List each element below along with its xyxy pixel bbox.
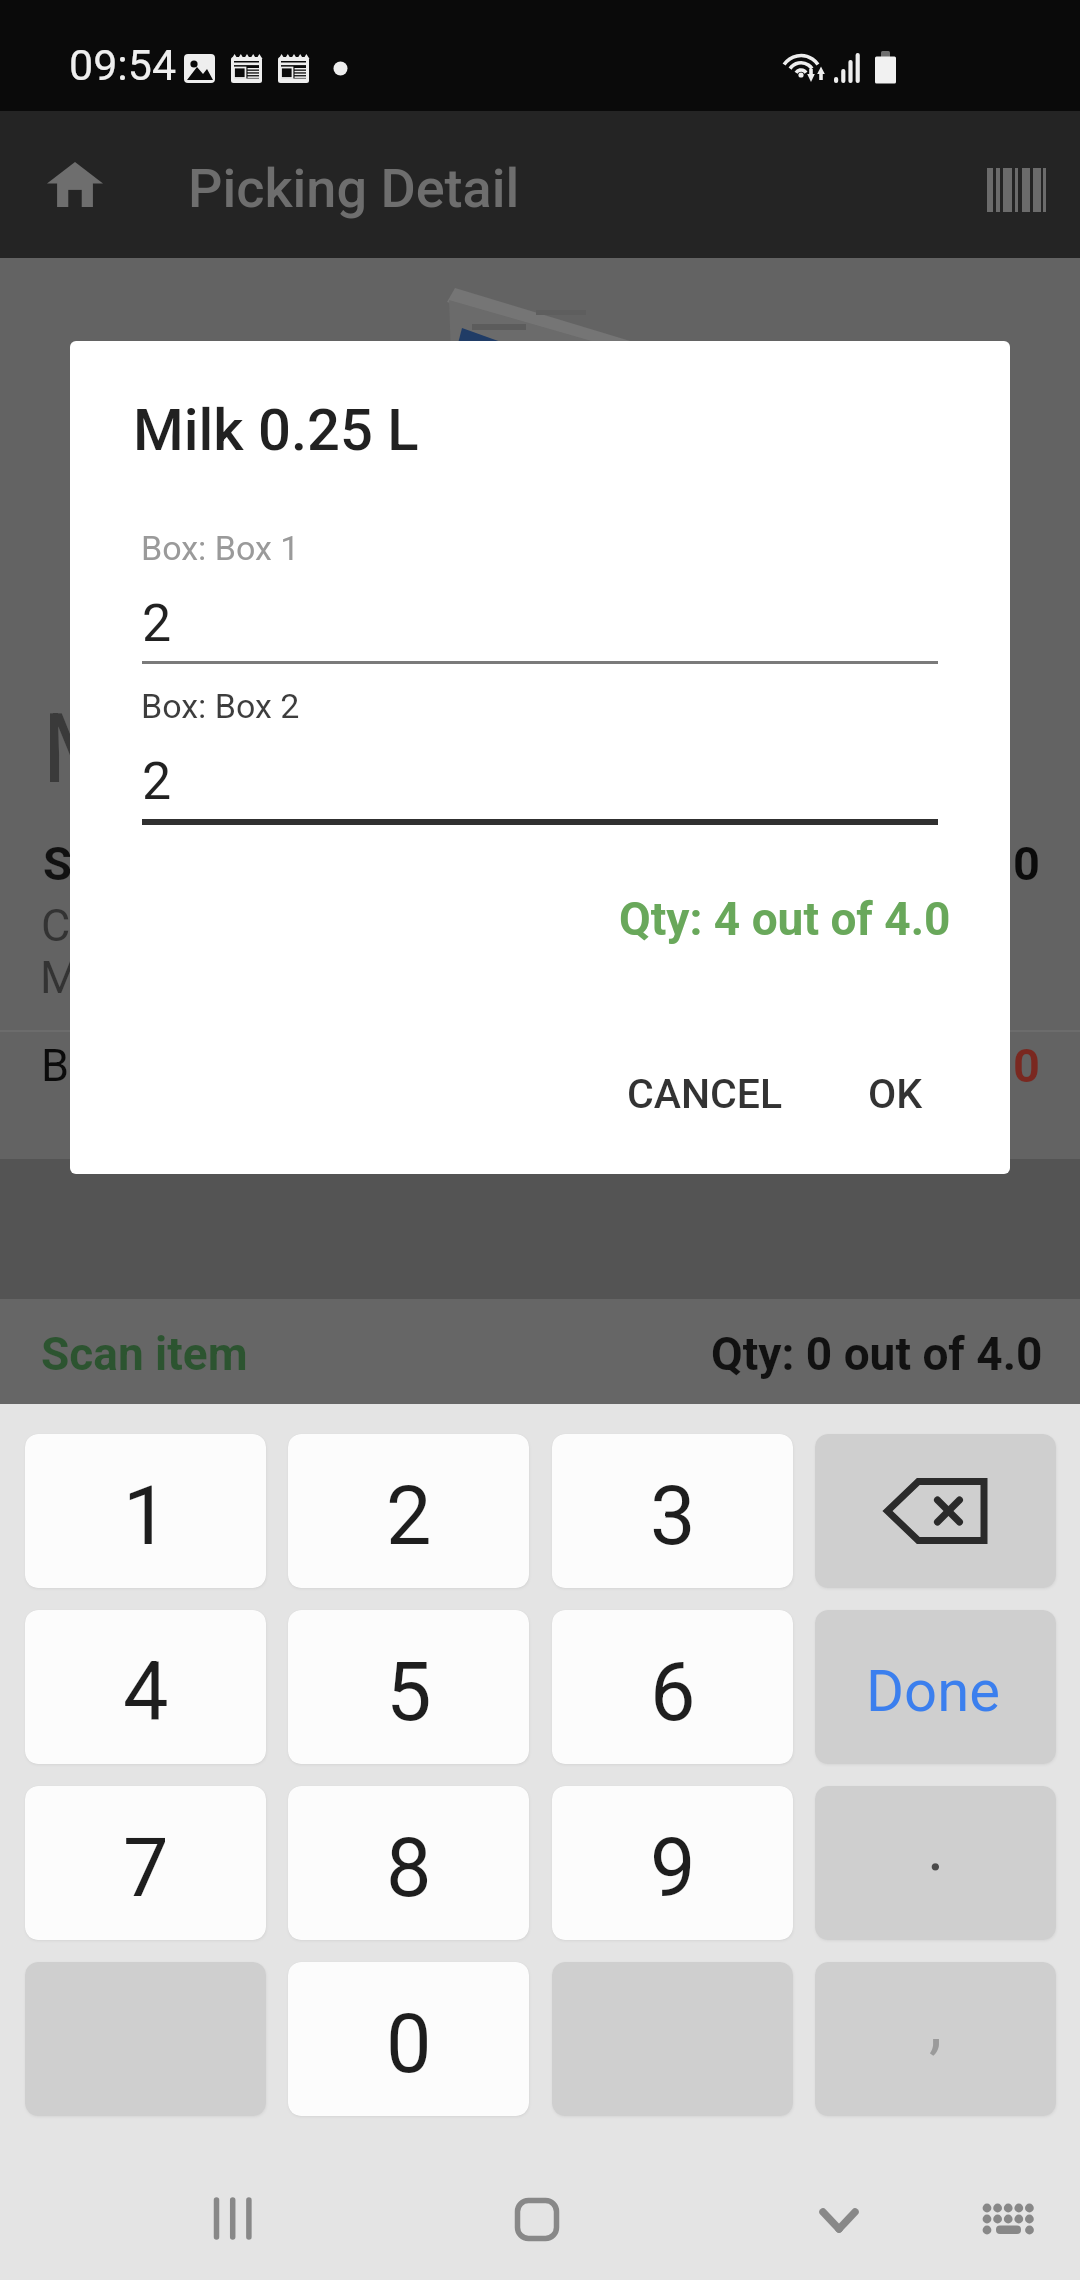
staticText: Client: Maxima <box>41 899 339 952</box>
button[interactable]: 8 <box>288 1786 529 1940</box>
button[interactable]: 2 <box>288 1434 529 1588</box>
button[interactable]: Done <box>815 1610 1056 1764</box>
staticText: 0 <box>1013 836 1040 891</box>
button[interactable]: 6 <box>552 1610 793 1764</box>
staticText: Milk 0.25 L <box>133 396 419 464</box>
staticText: Qty: 0 out of 4.0 <box>711 1327 1043 1381</box>
staticText: 0 <box>1013 1038 1040 1093</box>
button[interactable]: Scan barcode <box>987 168 1047 212</box>
staticText: Box: Box 1 <box>141 528 300 568</box>
staticText: OK <box>868 1070 923 1118</box>
button[interactable]: Hide keyboard <box>778 2180 898 2280</box>
button[interactable]: Change keyboard <box>948 2180 1068 2280</box>
button[interactable]: Recent apps <box>158 2180 278 2280</box>
button[interactable]: . <box>815 1786 1056 1940</box>
button[interactable]: OK <box>854 1058 937 1130</box>
staticText: Picking Detail <box>188 157 520 220</box>
button[interactable]: 0 <box>288 1962 529 2116</box>
staticText: Sku: 10021 <box>43 836 284 891</box>
staticText: 1 <box>123 1469 169 1564</box>
staticText: Scan item <box>41 1327 248 1381</box>
staticText: 5 <box>386 1645 432 1740</box>
staticText: 09:54 <box>69 40 177 90</box>
staticText: . <box>927 1809 945 1886</box>
staticText: , <box>929 1985 942 2062</box>
staticText: Box: Box 2 <box>141 686 300 726</box>
button[interactable]: Home <box>47 162 103 207</box>
button[interactable]: 9 <box>552 1786 793 1940</box>
staticText: Milk 0.25 L <box>42 692 513 806</box>
staticText: CANCEL <box>627 1070 783 1118</box>
staticText: 3 <box>650 1469 696 1564</box>
staticText: Done <box>866 1657 1000 1725</box>
button[interactable]: Home <box>476 2180 596 2280</box>
button[interactable]: 4 <box>25 1610 266 1764</box>
staticText: Milk 0.25 L <box>40 951 259 1004</box>
button[interactable]: 1 <box>25 1434 266 1588</box>
staticText: 0 <box>386 1997 432 2092</box>
staticText: 2 <box>142 593 172 654</box>
button[interactable]: 3 <box>552 1434 793 1588</box>
button[interactable]: 7 <box>25 1786 266 1940</box>
staticText: 8 <box>386 1821 432 1916</box>
staticText: 6 <box>650 1645 696 1740</box>
button[interactable]: Scan item <box>0 1299 1080 1404</box>
button[interactable]: Backspace <box>815 1434 1056 1588</box>
staticText: 2 <box>386 1469 432 1564</box>
staticText: 7 <box>123 1821 169 1916</box>
staticText: Qty: 4 out of 4.0 <box>619 892 951 946</box>
staticText: 4 <box>123 1645 169 1740</box>
staticText: 9 <box>650 1821 696 1916</box>
button[interactable]: CANCEL <box>613 1058 797 1130</box>
staticText: 2 <box>142 751 172 812</box>
button[interactable]: 5 <box>288 1610 529 1764</box>
staticText: Box 1 <box>41 1039 154 1092</box>
